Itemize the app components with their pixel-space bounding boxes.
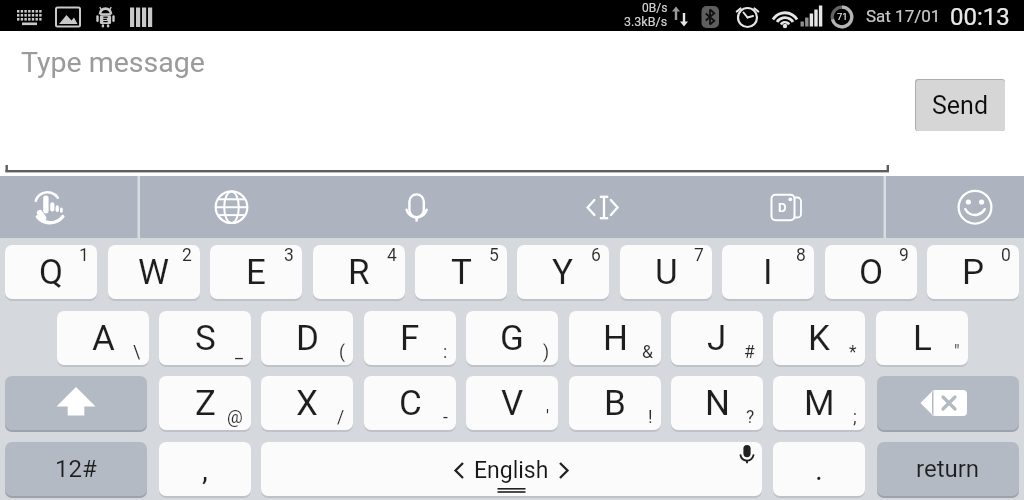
staticText: 5: [489, 245, 499, 266]
button[interactable]: Z: [159, 376, 251, 430]
staticText: L: [913, 318, 932, 359]
staticText: B: [604, 383, 626, 424]
button[interactable]: [5, 376, 147, 430]
staticText: D: [778, 200, 787, 215]
staticText: Sat 17/01: [866, 6, 941, 26]
button[interactable]: [326, 176, 509, 238]
staticText: 3: [284, 245, 294, 266]
staticText: ,: [202, 452, 208, 487]
button[interactable]: X: [261, 376, 353, 430]
button[interactable]: W: [108, 245, 200, 299]
staticText: G: [500, 318, 524, 359]
button[interactable]: A: [57, 311, 149, 365]
staticText: :: [443, 342, 448, 363]
staticText: K: [808, 318, 830, 359]
staticText: 4: [387, 245, 397, 266]
staticText: /: [337, 407, 345, 428]
staticText: C: [399, 383, 422, 424]
button[interactable]: I: [722, 245, 814, 299]
staticText: V: [501, 383, 524, 424]
button[interactable]: K: [773, 311, 865, 365]
staticText: ": [954, 342, 960, 363]
staticText: S: [195, 318, 216, 359]
button[interactable]: M: [773, 376, 865, 430]
button[interactable]: O: [825, 245, 917, 299]
button[interactable]: H: [569, 311, 661, 365]
staticText: 8: [796, 245, 806, 266]
staticText: 00:13: [950, 3, 1010, 31]
button[interactable]: Q: [5, 245, 97, 299]
staticText: U: [655, 252, 678, 293]
button[interactable]: P: [927, 245, 1019, 299]
staticText: #: [744, 342, 755, 363]
button[interactable]: G: [466, 311, 558, 365]
staticText: D: [296, 318, 319, 359]
button[interactable]: English: [261, 442, 762, 496]
staticText: Send: [932, 91, 989, 120]
staticText: M: [804, 383, 835, 424]
button[interactable]: V: [466, 376, 558, 430]
button[interactable]: U: [620, 245, 712, 299]
staticText: N: [705, 383, 730, 424]
staticText: E: [246, 252, 266, 293]
staticText: _: [235, 342, 243, 363]
staticText: 9: [899, 245, 909, 266]
staticText: ?: [746, 407, 755, 428]
staticText: H: [603, 318, 628, 359]
button[interactable]: [140, 176, 323, 238]
button[interactable]: [513, 176, 696, 238]
button[interactable]: D: [261, 311, 353, 365]
staticText: English: [474, 457, 549, 484]
button[interactable]: R: [313, 245, 405, 299]
staticText: *: [849, 342, 857, 363]
button[interactable]: L: [876, 311, 968, 365]
button[interactable]: Send: [916, 80, 1005, 131]
staticText: ': [546, 407, 550, 428]
staticText: ): [543, 342, 550, 363]
button[interactable]: B: [569, 376, 661, 430]
button[interactable]: E: [210, 245, 302, 299]
staticText: ;: [853, 407, 857, 428]
staticText: R: [348, 252, 370, 293]
button[interactable]: return: [877, 442, 1019, 496]
button[interactable]: J: [671, 311, 763, 365]
staticText: @: [227, 407, 243, 428]
staticText: 71: [837, 11, 848, 22]
staticText: P: [962, 252, 985, 293]
button[interactable]: N: [671, 376, 763, 430]
button[interactable]: S: [159, 311, 251, 365]
staticText: (: [339, 342, 345, 363]
staticText: Q: [39, 252, 64, 293]
staticText: Type message: [21, 46, 205, 79]
staticText: 2: [182, 245, 192, 266]
button[interactable]: [699, 176, 882, 238]
staticText: -: [443, 407, 448, 428]
button[interactable]: [886, 176, 1024, 238]
staticText: F: [400, 318, 420, 359]
button[interactable]: [877, 376, 1019, 430]
button[interactable]: [0, 176, 137, 238]
staticText: 7: [694, 245, 704, 266]
staticText: !: [648, 407, 653, 428]
button[interactable]: 12#: [5, 442, 147, 496]
staticText: Z: [195, 383, 216, 424]
staticText: 0: [1001, 245, 1011, 266]
button[interactable]: .: [773, 442, 865, 496]
staticText: T: [451, 252, 472, 293]
staticText: A: [92, 318, 115, 359]
button[interactable]: C: [364, 376, 456, 430]
button[interactable]: ,: [159, 442, 251, 496]
staticText: &: [642, 342, 653, 363]
staticText: 12#: [55, 455, 97, 483]
button[interactable]: T: [415, 245, 507, 299]
staticText: 1: [79, 245, 89, 266]
staticText: O: [859, 252, 884, 293]
button[interactable]: Y: [517, 245, 609, 299]
staticText: W: [138, 252, 170, 293]
button[interactable]: F: [364, 311, 456, 365]
staticText: return: [916, 455, 980, 483]
staticText: 6: [591, 245, 601, 266]
staticText: J: [707, 318, 727, 359]
staticText: Y: [552, 252, 574, 293]
staticText: I: [763, 252, 773, 293]
